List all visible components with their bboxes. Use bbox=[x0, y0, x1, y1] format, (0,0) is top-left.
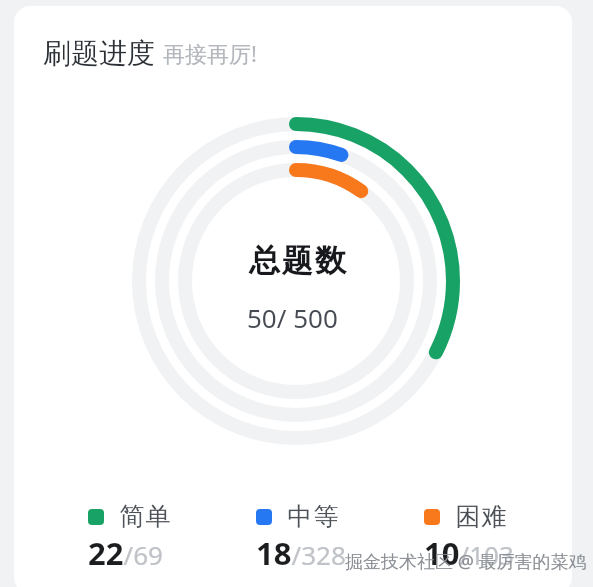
staticText: 总题数 bbox=[248, 241, 347, 280]
staticText: 10/103 bbox=[424, 532, 514, 574]
staticText: 困难 bbox=[455, 501, 507, 532]
staticText: 刷题进度 bbox=[43, 36, 155, 71]
button[interactable]: 困难 bbox=[424, 501, 507, 532]
staticText: 50/ 500 bbox=[247, 300, 338, 335]
staticText: 22/69 bbox=[88, 532, 163, 574]
button[interactable]: 中等 bbox=[256, 501, 339, 532]
staticText: 18/328 bbox=[256, 532, 346, 574]
staticText: 再接再厉! bbox=[163, 38, 257, 68]
staticText: 简单 bbox=[119, 501, 171, 532]
staticText: 掘金技术社区 @ 最厉害的菜鸡 bbox=[345, 549, 587, 574]
button[interactable]: 简单 bbox=[88, 501, 171, 532]
staticText: 中等 bbox=[287, 501, 339, 532]
